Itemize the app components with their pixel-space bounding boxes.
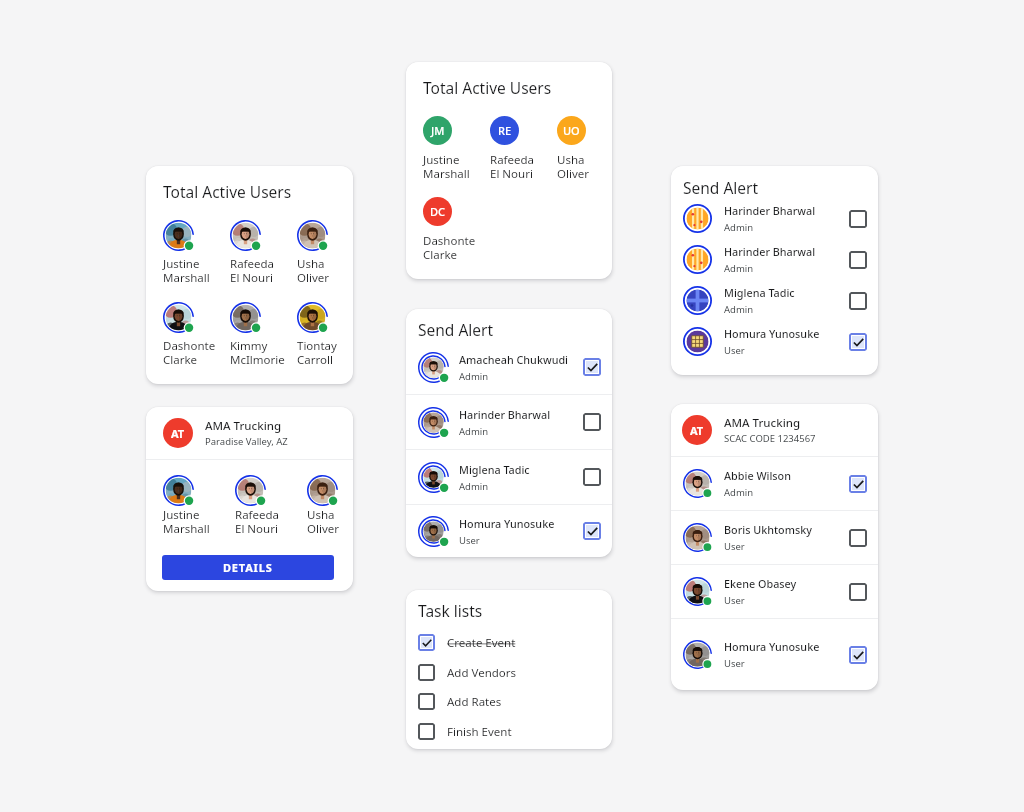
button[interactable]: Selected [849, 333, 867, 351]
staticText: Justine Marshall [423, 152, 470, 181]
staticText: Justine Marshall [163, 256, 210, 285]
button[interactable]: Homura Yunosuke [671, 321, 878, 362]
staticText: Harinder Bharwal [724, 244, 816, 259]
staticText: Abbie Wilson [724, 468, 791, 483]
staticText: AT [690, 423, 704, 438]
staticText: Justine Marshall [163, 507, 210, 536]
button[interactable]: Not selected [849, 529, 867, 547]
button[interactable]: Abbie Wilson [671, 457, 878, 510]
staticText: Admin [724, 303, 754, 316]
button[interactable]: AT [671, 404, 878, 456]
staticText: Harinder Bharwal [459, 407, 551, 422]
staticText: Usha Oliver [297, 256, 329, 285]
staticText: Dashonte Clarke [423, 233, 476, 262]
staticText: Usha Oliver [307, 507, 339, 536]
staticText: Admin [459, 370, 489, 383]
button[interactable]: Amacheah Chukwudi [406, 340, 612, 394]
staticText: Homura Yunosuke [459, 516, 555, 531]
staticText: Task lists [418, 600, 483, 621]
staticText: User [724, 344, 745, 357]
staticText: Dashonte Clarke [163, 338, 216, 367]
button[interactable]: Not selected [418, 723, 435, 740]
staticText: Usha Oliver [557, 152, 589, 181]
button[interactable]: Not selected [406, 661, 612, 684]
staticText: AT [171, 426, 185, 441]
button[interactable]: Boris Ukhtomsky [671, 511, 878, 564]
button[interactable]: Not selected [418, 693, 435, 710]
staticText: Add Vendors [447, 665, 517, 681]
button[interactable]: Not selected [849, 583, 867, 601]
button[interactable]: Harinder Bharwal [406, 395, 612, 449]
staticText: DETAILS [223, 560, 273, 575]
button[interactable]: Not selected [849, 251, 867, 269]
staticText: Admin [724, 486, 754, 499]
button[interactable]: Harinder Bharwal [671, 198, 878, 239]
staticText: AMA Trucking [724, 415, 801, 431]
button[interactable]: Harinder Bharwal [671, 239, 878, 280]
button[interactable]: Miglena Tadic [671, 280, 878, 321]
staticText: User [724, 657, 745, 670]
button[interactable]: Not selected [406, 690, 612, 713]
button[interactable]: Homura Yunosuke [406, 505, 612, 557]
staticText: Total Active Users [423, 77, 552, 98]
button[interactable]: Not selected [849, 210, 867, 228]
button[interactable]: Homura Yunosuke [671, 619, 878, 690]
staticText: RE [498, 123, 512, 138]
staticText: Admin [724, 221, 754, 234]
staticText: User [459, 534, 480, 547]
staticText: Total Active Users [163, 181, 292, 202]
button[interactable]: Not selected [849, 292, 867, 310]
button[interactable]: Selected [406, 631, 612, 654]
staticText: Paradise Valley, AZ [205, 435, 288, 448]
staticText: Kimmy McIlmorie [230, 338, 285, 367]
staticText: Boris Ukhtomsky [724, 522, 812, 537]
button[interactable]: Not selected [406, 720, 612, 743]
button[interactable]: Selected [849, 475, 867, 493]
staticText: Homura Yunosuke [724, 639, 820, 654]
button[interactable]: Selected [849, 646, 867, 664]
staticText: Send Alert [683, 177, 759, 198]
button[interactable]: Selected [418, 634, 435, 651]
button[interactable]: Ekene Obasey [671, 565, 878, 618]
button[interactable]: Selected [583, 358, 601, 376]
staticText: User [724, 540, 745, 553]
button[interactable]: AT [146, 407, 353, 459]
staticText: Rafeeda El Nouri [490, 152, 535, 181]
button[interactable]: Not selected [418, 664, 435, 681]
button[interactable]: Miglena Tadic [406, 450, 612, 504]
staticText: Admin [459, 425, 489, 438]
staticText: Finish Event [447, 724, 512, 740]
staticText: Ekene Obasey [724, 576, 797, 591]
staticText: UO [563, 123, 580, 138]
staticText: AMA Trucking [205, 418, 282, 434]
staticText: Admin [724, 262, 754, 275]
button[interactable]: Not selected [583, 413, 601, 431]
staticText: Amacheah Chukwudi [459, 352, 569, 367]
staticText: DC [430, 204, 446, 219]
staticText: Miglena Tadic [459, 462, 530, 477]
button[interactable]: Not selected [583, 468, 601, 486]
staticText: Rafeeda El Nouri [235, 507, 280, 536]
button[interactable]: DETAILS [162, 555, 334, 580]
staticText: Admin [459, 480, 489, 493]
staticText: Tiontay Carroll [297, 338, 337, 367]
staticText: Add Rates [447, 694, 502, 710]
staticText: Miglena Tadic [724, 285, 795, 300]
staticText: SCAC CODE 1234567 [724, 432, 816, 445]
staticText: Harinder Bharwal [724, 203, 816, 218]
button[interactable]: Selected [583, 522, 601, 540]
staticText: JM [431, 123, 445, 138]
staticText: User [724, 594, 745, 607]
staticText: Rafeeda El Nouri [230, 256, 275, 285]
staticText: Send Alert [418, 319, 494, 340]
staticText: Create Event [447, 635, 516, 651]
staticText: Homura Yunosuke [724, 326, 820, 341]
